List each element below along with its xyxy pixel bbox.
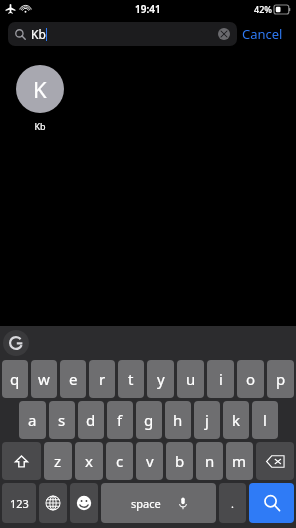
staticText: n (205, 451, 215, 471)
button[interactable]: u (177, 360, 204, 398)
staticText: . (231, 496, 234, 511)
staticText: f (117, 410, 123, 430)
staticText: j (205, 410, 209, 430)
button[interactable]: Backspace (256, 442, 294, 480)
button[interactable]: g (136, 401, 162, 439)
staticText: K (33, 74, 47, 104)
button[interactable]: q (2, 360, 28, 398)
button[interactable]: Kb (8, 22, 237, 46)
staticText: h (173, 410, 183, 430)
staticText: space (131, 496, 161, 511)
staticText: d (86, 410, 96, 430)
button[interactable]: b (166, 442, 193, 480)
staticText: e (69, 369, 78, 389)
button[interactable]: Cancel (237, 21, 288, 47)
button[interactable]: Change language (39, 483, 67, 523)
button[interactable]: x (75, 442, 103, 480)
button[interactable]: a (19, 401, 46, 439)
button[interactable]: n (196, 442, 223, 480)
button[interactable]: j (194, 401, 220, 439)
button[interactable]: 123 (2, 483, 36, 523)
staticText: z (54, 451, 62, 471)
button[interactable]: i (207, 360, 234, 398)
button[interactable]: v (136, 442, 163, 480)
button[interactable]: w (31, 360, 57, 398)
staticText: b (175, 451, 185, 471)
staticText: 123 (10, 496, 29, 511)
staticText: a (28, 410, 37, 430)
button[interactable]: m (226, 442, 253, 480)
button[interactable]: Keyboard settings (3, 330, 29, 356)
button[interactable]: c (106, 442, 133, 480)
button[interactable]: s (49, 401, 75, 439)
staticText: u (186, 369, 196, 389)
staticText: Kb (34, 120, 46, 132)
staticText: m (232, 451, 247, 471)
staticText: y (157, 369, 165, 389)
button[interactable]: k (223, 401, 249, 439)
staticText: c (116, 451, 124, 471)
button[interactable]: y (147, 360, 174, 398)
button[interactable]: l (252, 401, 278, 439)
button[interactable]: K (16, 65, 64, 132)
staticText: 19:41 (135, 2, 161, 16)
button[interactable]: d (78, 401, 104, 439)
staticText: p (276, 369, 286, 389)
button[interactable]: p (267, 360, 294, 398)
staticText: i (219, 369, 223, 389)
button[interactable]: . (219, 483, 246, 523)
staticText: l (263, 410, 267, 430)
button[interactable]: z (44, 442, 72, 480)
staticText: g (144, 410, 154, 430)
staticText: s (58, 410, 66, 430)
button[interactable]: f (107, 401, 133, 439)
staticText: Cancel (242, 25, 283, 43)
button[interactable]: r (89, 360, 115, 398)
staticText: v (146, 451, 154, 471)
staticText: r (99, 369, 106, 389)
button[interactable]: t (118, 360, 144, 398)
staticText: o (246, 369, 256, 389)
button[interactable]: o (237, 360, 264, 398)
button[interactable]: space (101, 483, 216, 523)
button[interactable]: Emoji (70, 483, 98, 523)
staticText: w (38, 369, 50, 389)
staticText: x (85, 451, 93, 471)
button[interactable]: h (165, 401, 191, 439)
staticText: Kb (31, 26, 46, 42)
staticText: k (232, 410, 241, 430)
button[interactable]: e (60, 360, 86, 398)
button[interactable]: Clear text (218, 28, 230, 40)
button[interactable]: Search (249, 483, 294, 523)
staticText: t (128, 369, 134, 389)
staticText: 42% (254, 3, 272, 15)
button[interactable]: Shift (2, 442, 41, 480)
staticText: q (10, 369, 20, 389)
